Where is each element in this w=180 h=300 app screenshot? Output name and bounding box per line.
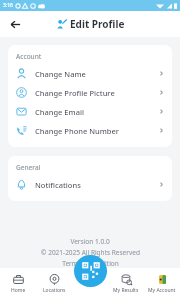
staticText: Locations	[43, 287, 66, 294]
button[interactable]: Locations	[36, 268, 72, 300]
staticText: Notifications	[35, 180, 81, 190]
staticText: Home	[11, 287, 26, 294]
button[interactable]: Change Name	[16, 64, 165, 83]
button[interactable]: Back	[6, 15, 24, 33]
staticText: Terms & Condition	[62, 259, 119, 268]
staticText: My Account	[148, 287, 176, 294]
staticText: Version 1.0.0	[70, 237, 110, 246]
staticText: Change Email	[35, 107, 84, 117]
button[interactable]: My Results	[108, 268, 144, 300]
button[interactable]: Notifications	[16, 175, 165, 194]
staticText: 3:16	[3, 2, 13, 9]
button[interactable]: Change Email	[16, 102, 165, 121]
button[interactable]: Change Phone Number	[16, 121, 165, 140]
staticText: Edit Profile	[70, 17, 125, 31]
button[interactable]: Home	[0, 268, 36, 300]
button[interactable]: Scan QR code	[74, 255, 107, 287]
button[interactable]: Change Profile Picture	[16, 83, 165, 102]
button[interactable]: My Account	[144, 268, 180, 300]
staticText: My Results	[113, 287, 139, 294]
staticText: Change Name	[35, 69, 86, 79]
staticText: Account	[16, 52, 42, 61]
staticText: Change Phone Number	[35, 126, 119, 136]
staticText: Change Profile Picture	[35, 88, 115, 98]
staticText: General	[16, 163, 41, 172]
staticText: © 2021-2025 All Rights Reserved	[41, 248, 140, 257]
